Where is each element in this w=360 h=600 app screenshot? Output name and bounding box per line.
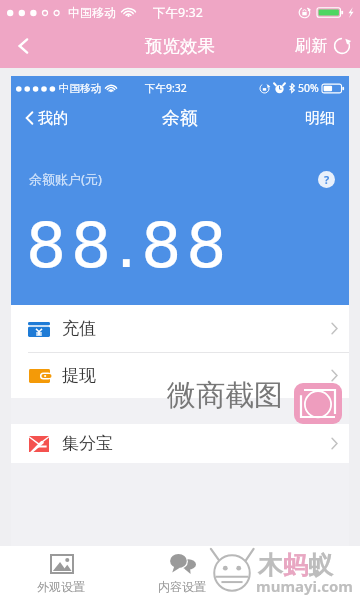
button[interactable]: 刷新 [295,24,351,68]
staticText: 集分宝 [62,433,113,454]
staticText: 50% [298,81,319,95]
staticText: 余额账户(元) [29,170,102,188]
staticText: 木 [258,550,283,581]
staticText: 下午9:32 [153,4,203,21]
staticText: 提现 [62,365,96,386]
button[interactable]: 外观设置 [11,546,111,600]
staticText: 预览效果 [145,35,215,57]
staticText: 88.88 [26,209,232,282]
button[interactable]: 集分宝 [11,424,349,463]
button[interactable]: 内容设置 [132,546,232,600]
staticText: 中国移动 [68,5,116,20]
button[interactable]: 我的 [25,100,68,136]
staticText: 明细 [305,109,335,128]
button[interactable]: Back [0,24,46,68]
button[interactable]: 充值 [11,305,349,352]
button[interactable]: 提现 [11,353,349,398]
staticText: 微商截图 [167,377,283,414]
staticText: 余额 [162,107,198,130]
staticText: 我的 [38,109,68,128]
staticText: 蚁 [308,550,333,581]
button[interactable]: Help [318,171,335,188]
staticText: 下午9:32 [145,81,187,95]
button[interactable]: 明细 [305,100,335,136]
staticText: 外观设置 [37,579,85,594]
staticText: 内容设置 [158,579,206,594]
staticText: 充值 [62,318,96,339]
staticText: 刷新 [295,36,327,56]
staticText: 蚂 [283,550,308,581]
staticText: mumayi.com [256,576,353,596]
staticText: ? [324,172,330,187]
staticText: 中国移动 [59,82,101,95]
